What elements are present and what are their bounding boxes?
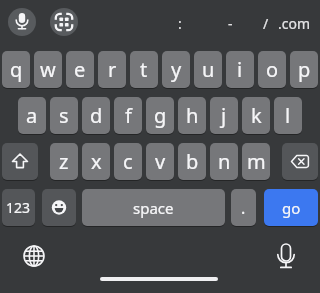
button[interactable]: k [242, 97, 270, 134]
button[interactable]: . [231, 189, 256, 226]
staticText: f [125, 102, 132, 129]
staticText: a [26, 102, 38, 129]
staticText: z [59, 148, 69, 175]
staticText: m [247, 148, 266, 175]
button[interactable]: p [290, 51, 318, 88]
button[interactable]: z [50, 143, 78, 180]
staticText: o [266, 56, 279, 83]
button[interactable]: f [114, 97, 142, 134]
button[interactable]: w [34, 51, 62, 88]
staticText: t [140, 56, 148, 83]
button[interactable]: / [240, 8, 292, 38]
button[interactable]: a [18, 97, 46, 134]
staticText: j [221, 102, 227, 129]
staticText: 123 [6, 198, 31, 217]
staticText: u [202, 56, 215, 83]
staticText: s [59, 102, 69, 129]
staticText: go [282, 198, 301, 218]
staticText: b [186, 148, 199, 175]
staticText: i [237, 56, 243, 83]
button[interactable] [20, 242, 48, 270]
button[interactable]: u [194, 51, 222, 88]
button[interactable]: go [264, 189, 318, 226]
staticText: : [178, 14, 182, 33]
button[interactable]: e [66, 51, 94, 88]
staticText: h [186, 102, 199, 129]
staticText: x [91, 148, 102, 175]
button[interactable]: 123 [2, 189, 35, 226]
button[interactable]: n [210, 143, 238, 180]
staticText: d [90, 102, 103, 129]
button[interactable]: i [226, 51, 254, 88]
button[interactable] [8, 8, 36, 36]
staticText: r [108, 56, 117, 83]
button[interactable]: c [114, 143, 142, 180]
staticText: / [263, 14, 269, 33]
button[interactable]: m [242, 143, 270, 180]
staticText: w [40, 56, 56, 83]
button[interactable]: d [82, 97, 110, 134]
button[interactable] [42, 189, 76, 226]
staticText: c [123, 148, 133, 175]
staticText: - [228, 14, 233, 33]
button[interactable]: v [146, 143, 174, 180]
button[interactable]: b [178, 143, 206, 180]
button[interactable]: s [50, 97, 78, 134]
button[interactable]: space [82, 189, 225, 226]
button[interactable] [272, 242, 300, 272]
staticText: v [155, 148, 166, 175]
staticText: g [154, 102, 167, 129]
staticText: q [10, 56, 23, 83]
staticText: p [298, 56, 311, 83]
button[interactable]: : [154, 8, 206, 38]
staticText: space [133, 198, 174, 218]
button[interactable]: o [258, 51, 286, 88]
button[interactable]: h [178, 97, 206, 134]
button[interactable]: y [162, 51, 190, 88]
button[interactable]: q [2, 51, 30, 88]
staticText: e [74, 56, 86, 83]
button[interactable]: r [98, 51, 126, 88]
staticText: l [285, 102, 291, 129]
button[interactable]: - [204, 8, 256, 38]
staticText: k [251, 102, 262, 129]
button[interactable]: x [82, 143, 110, 180]
button[interactable]: g [146, 97, 174, 134]
button[interactable] [50, 8, 78, 36]
staticText: .com [278, 14, 311, 33]
button[interactable] [2, 143, 38, 180]
button[interactable]: j [210, 97, 238, 134]
button[interactable] [282, 143, 318, 180]
staticText: n [218, 148, 231, 175]
button[interactable]: t [130, 51, 158, 88]
button[interactable]: .com [268, 8, 320, 38]
staticText: . [241, 197, 246, 219]
staticText: y [171, 56, 182, 83]
button[interactable]: l [274, 97, 302, 134]
